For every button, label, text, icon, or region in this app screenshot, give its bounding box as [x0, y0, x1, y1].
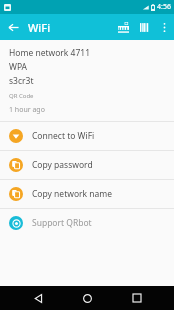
staticText: WiFi — [28, 20, 51, 35]
button[interactable]: Show as text — [112, 16, 134, 38]
button[interactable]: Recent apps — [125, 286, 149, 310]
button[interactable]: Back — [26, 286, 50, 310]
button[interactable]: Connect to WiFi — [0, 122, 174, 150]
staticText: 4:56 — [157, 2, 171, 12]
staticText: s3cr3t — [9, 75, 34, 87]
staticText: Home network 4711 — [9, 47, 91, 59]
staticText: Copy password — [32, 159, 93, 171]
staticText: Support QRbot — [32, 217, 92, 229]
staticText: Copy network name — [32, 188, 113, 200]
staticText: QR Code — [9, 92, 34, 100]
button[interactable]: Copy password — [0, 151, 174, 179]
staticText: 1 hour ago — [9, 105, 45, 115]
button[interactable]: Support QRbot — [0, 209, 174, 237]
button[interactable]: More options — [156, 19, 173, 36]
button[interactable]: Home — [75, 286, 99, 310]
button[interactable]: Show barcode — [134, 16, 156, 38]
staticText: Connect to WiFi — [32, 130, 95, 142]
button[interactable]: Navigate up — [2, 16, 24, 38]
staticText: WPA — [9, 61, 28, 73]
button[interactable]: Copy network name — [0, 180, 174, 208]
